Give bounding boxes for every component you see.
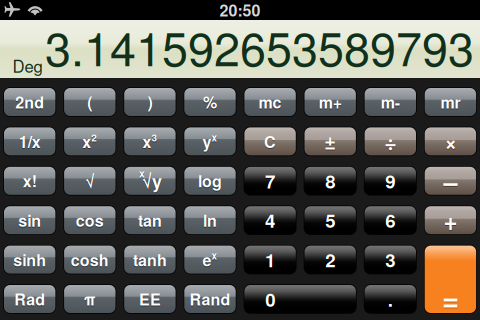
staticText: sinh	[13, 249, 46, 272]
staticText: m-	[381, 90, 400, 113]
button[interactable]: –	[425, 167, 476, 195]
staticText: x	[211, 131, 217, 145]
staticText: tan	[138, 210, 162, 233]
staticText: ×	[444, 127, 456, 158]
button[interactable]: )	[124, 88, 176, 116]
button[interactable]: mc	[244, 88, 296, 116]
staticText: 1	[265, 246, 275, 273]
staticText: log	[198, 170, 222, 193]
button[interactable]: 5	[304, 206, 356, 234]
button[interactable]: 7	[244, 167, 296, 195]
staticText: 4	[265, 207, 275, 233]
staticText: +	[443, 204, 457, 238]
staticText: ln	[203, 210, 217, 233]
button[interactable]: 2nd	[4, 88, 55, 116]
staticText: 20:50	[219, 0, 260, 21]
staticText: x	[211, 248, 217, 263]
button[interactable]: 9	[365, 167, 416, 195]
button[interactable]: cos	[64, 206, 115, 234]
staticText: =	[442, 278, 459, 320]
staticText: 8	[325, 168, 335, 195]
button[interactable]: 0	[244, 285, 356, 313]
button[interactable]: y	[184, 127, 236, 155]
button[interactable]: ln	[184, 206, 236, 234]
button[interactable]: 1	[244, 246, 296, 274]
button[interactable]: cosh	[64, 246, 115, 274]
staticText: sin	[18, 210, 41, 233]
button[interactable]: ÷	[365, 127, 416, 155]
staticText: 9	[385, 168, 395, 195]
button[interactable]: x!	[4, 167, 55, 195]
staticText: cosh	[71, 249, 109, 272]
button[interactable]: √y	[124, 167, 176, 195]
button[interactable]: %	[184, 88, 236, 116]
staticText: 3	[385, 246, 395, 273]
staticText: –	[443, 164, 457, 200]
staticText: x	[82, 130, 91, 153]
staticText: 2	[91, 131, 97, 145]
button[interactable]: sin	[4, 206, 55, 234]
staticText: Deg	[12, 54, 42, 77]
button[interactable]: (	[64, 88, 115, 116]
staticText: √y	[142, 169, 162, 195]
button[interactable]: x	[64, 127, 115, 155]
button[interactable]: Rad	[4, 285, 55, 313]
button[interactable]: √	[64, 167, 115, 195]
staticText: e	[202, 249, 211, 272]
staticText: Rad	[14, 287, 45, 310]
staticText: x	[139, 166, 145, 181]
staticText: .	[388, 286, 393, 312]
staticText: 1/x	[19, 130, 41, 153]
staticText: )	[147, 91, 152, 114]
button[interactable]: ×	[425, 127, 476, 155]
staticText: 3	[151, 131, 157, 145]
button[interactable]: 1/x	[4, 127, 55, 155]
staticText: m-	[381, 91, 400, 114]
button[interactable]: 4	[244, 206, 296, 234]
button[interactable]: log	[184, 167, 236, 195]
staticText: EE	[139, 288, 161, 311]
button[interactable]: sinh	[4, 246, 55, 274]
button[interactable]: +	[425, 206, 476, 234]
staticText: √y	[142, 168, 162, 194]
staticText: x!	[23, 169, 37, 192]
button[interactable]: tan	[124, 206, 176, 234]
button[interactable]: =	[425, 246, 476, 313]
staticText: 9	[385, 167, 395, 194]
staticText: x	[82, 131, 91, 154]
button[interactable]: EE	[124, 285, 176, 313]
staticText: mc	[259, 91, 282, 114]
button[interactable]: x	[124, 127, 176, 155]
button[interactable]: .	[365, 285, 416, 313]
staticText: )	[147, 90, 152, 113]
button[interactable]: C	[244, 127, 296, 155]
staticText: cos	[76, 210, 104, 233]
staticText: Rand	[189, 288, 230, 311]
staticText: x	[142, 131, 151, 154]
staticText: 3	[385, 247, 395, 274]
staticText: ÷	[384, 126, 396, 157]
staticText: (	[87, 90, 92, 113]
staticText: mr	[440, 91, 460, 114]
button[interactable]: m+	[304, 88, 356, 116]
button[interactable]: Rand	[184, 285, 236, 313]
button[interactable]: π	[64, 285, 115, 313]
staticText: 3.141592653589793	[45, 13, 474, 79]
staticText: 7	[265, 167, 275, 194]
button[interactable]: e	[184, 246, 236, 274]
button[interactable]: mr	[425, 88, 476, 116]
staticText: ln	[203, 209, 217, 232]
staticText: %	[203, 91, 217, 114]
button[interactable]: 3	[365, 246, 416, 274]
staticText: 3	[151, 130, 157, 144]
button[interactable]: ±	[304, 127, 356, 155]
staticText: 0	[265, 286, 275, 312]
button[interactable]: 6	[365, 206, 416, 234]
staticText: 2	[325, 247, 335, 274]
staticText: π	[84, 287, 96, 310]
button[interactable]: m-	[365, 88, 416, 116]
button[interactable]: 2	[304, 246, 356, 274]
staticText: sin	[18, 209, 41, 232]
button[interactable]: tanh	[124, 246, 176, 274]
button[interactable]: 8	[304, 167, 356, 195]
